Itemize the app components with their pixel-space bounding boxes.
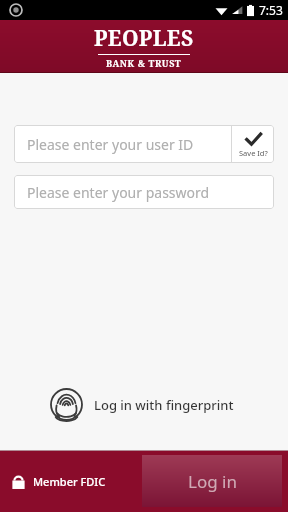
button[interactable]: Please enter your password <box>14 175 274 209</box>
staticText: PEOPLES <box>94 24 194 53</box>
button[interactable]: Log in with fingerprint <box>48 386 236 423</box>
button[interactable]: Please enter your user ID <box>14 125 231 163</box>
staticText: Please enter your user ID <box>27 135 194 154</box>
button[interactable]: Save Id <box>232 125 274 163</box>
staticText: 7:53 <box>259 2 283 18</box>
button[interactable]: Log in <box>142 455 282 507</box>
staticText: Log in <box>188 470 237 493</box>
staticText: Log in with fingerprint <box>94 396 234 414</box>
button[interactable]: Member FDIC <box>10 473 106 490</box>
staticText: Member FDIC <box>33 474 106 489</box>
staticText: Save Id? <box>239 148 268 158</box>
staticText: BANK & TRUST <box>106 57 182 69</box>
staticText: Please enter your password <box>27 183 210 202</box>
